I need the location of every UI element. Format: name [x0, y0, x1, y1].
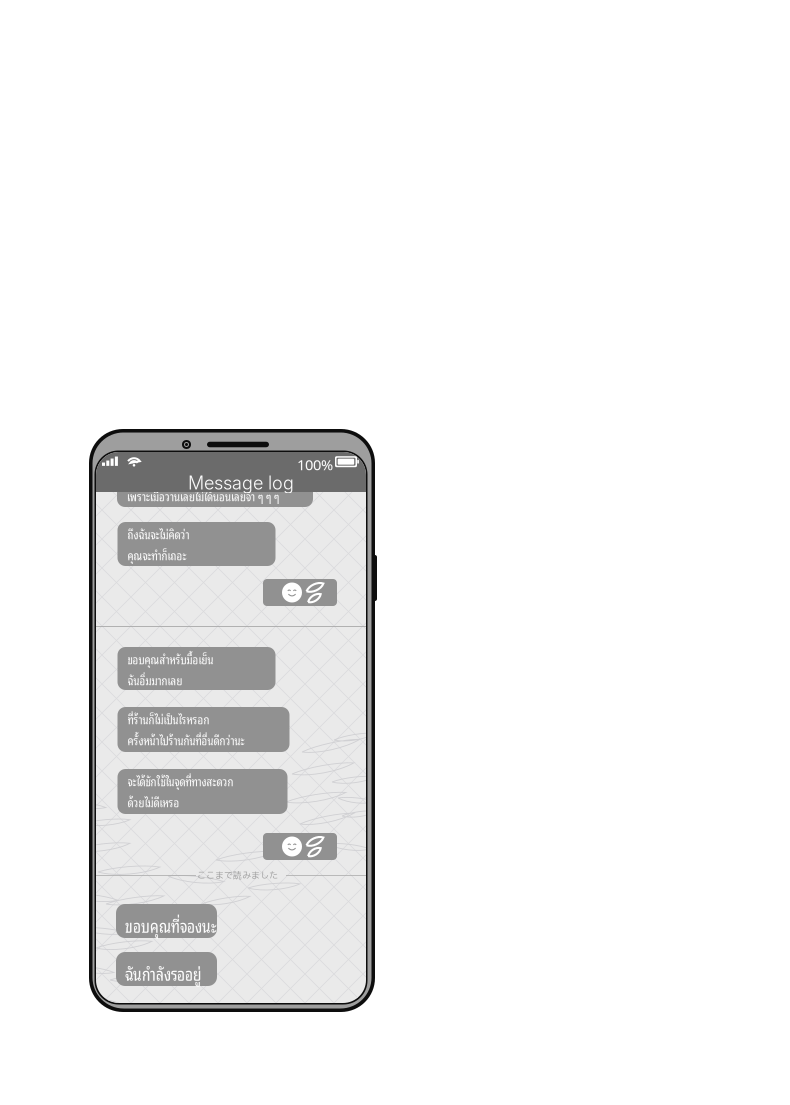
button[interactable]: ขอบคุณที่จองนะ — [116, 904, 217, 938]
staticText: ขอบคุณที่จองนะ — [125, 911, 217, 939]
button[interactable]: เพราะเมื่อวานเลยไม่ได้นอนเลยจ้า ๆ ๆ ๆ — [117, 465, 313, 507]
staticText: Message log — [188, 472, 294, 494]
staticText: 100% — [297, 455, 333, 474]
staticText: คุณจะทำก็เถอะ — [127, 545, 186, 565]
staticText: ขอบคุณสำหรับมื้อเย็น — [127, 649, 213, 669]
staticText: ถึงฉันจะไม่คิดว่า — [127, 524, 189, 544]
staticText: เพราะเมื่อวานเลยไม่ได้นอนเลยจ้า ๆ ๆ ๆ — [127, 486, 279, 506]
staticText: ครั้งหน้าไปร้านกันที่อื่นดีกว่านะ — [127, 730, 244, 750]
staticText: ฉันอิ่มมากเลย — [127, 670, 182, 690]
button[interactable]: ที่ร้านก็ไม่เป็นไรหรอก — [117, 707, 289, 752]
button[interactable]: ฉันกำลังรออยู่ — [116, 952, 217, 986]
staticText: ここまで読みました — [197, 869, 278, 883]
button[interactable]: Reactions — [263, 579, 337, 606]
staticText: ที่ร้านก็ไม่เป็นไรหรอก — [127, 709, 209, 729]
button[interactable]: Reactions — [263, 833, 337, 860]
staticText: จะได้ชักใช้ในจุดที่ทางสะดวก — [127, 771, 233, 791]
button[interactable]: ถึงฉันจะไม่คิดว่า — [117, 522, 275, 566]
button[interactable]: จะได้ชักใช้ในจุดที่ทางสะดวก — [117, 769, 287, 814]
staticText: ฉันกำลังรออยู่ — [125, 959, 201, 987]
button[interactable]: ขอบคุณสำหรับมื้อเย็น — [117, 647, 275, 690]
staticText: ด้วยไม่ดีเหรอ — [127, 792, 179, 812]
